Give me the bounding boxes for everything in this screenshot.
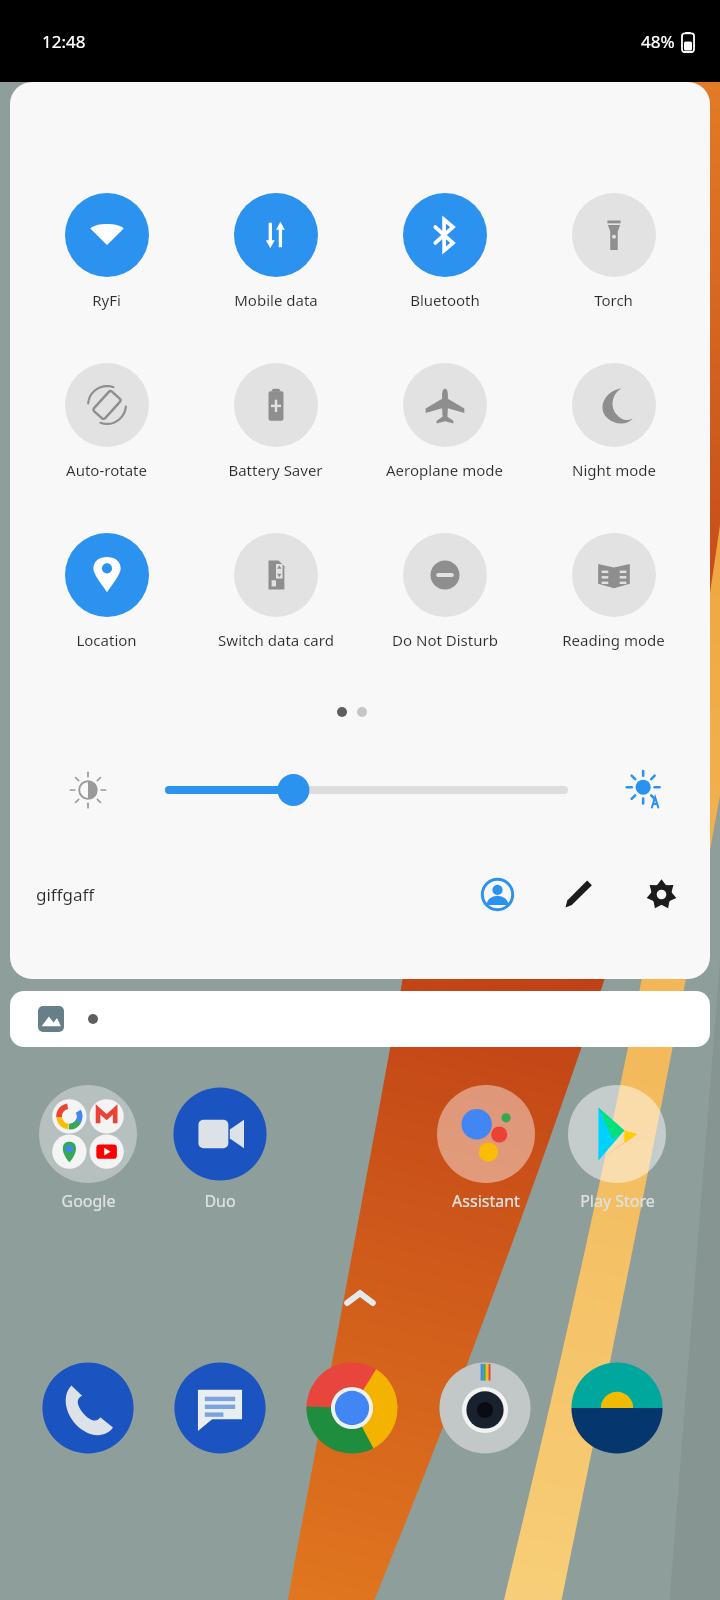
button[interactable]: Torch xyxy=(529,193,698,310)
button[interactable]: Brightness slider xyxy=(165,761,580,819)
staticText: giffgaff xyxy=(36,883,95,906)
staticText: Night mode xyxy=(572,460,656,480)
staticText: Mobile data xyxy=(234,290,318,310)
staticText: Switch data card xyxy=(218,630,334,650)
button[interactable]: Do Not Disturb xyxy=(360,533,529,650)
staticText: Google xyxy=(61,1190,116,1212)
staticText: Play Store xyxy=(580,1190,655,1212)
button[interactable]: Location xyxy=(22,533,191,650)
button[interactable]: Bluetooth xyxy=(360,193,529,310)
button[interactable]: Settings xyxy=(632,865,690,923)
button[interactable]: App shortcut xyxy=(436,1359,534,1457)
button[interactable]: Auto brightness xyxy=(580,761,710,819)
staticText: 48% xyxy=(641,30,675,53)
staticText: Battery Saver xyxy=(228,460,323,480)
button[interactable]: Switch data card xyxy=(191,533,360,650)
button[interactable]: Reading mode xyxy=(529,533,698,650)
staticText: Auto-rotate xyxy=(66,460,147,480)
staticText: Do Not Disturb xyxy=(392,630,498,650)
button[interactable]: Battery Saver xyxy=(191,363,360,480)
button[interactable]: App shortcut xyxy=(171,1359,269,1457)
button[interactable]: Auto-rotate xyxy=(22,363,191,480)
staticText: Reading mode xyxy=(562,630,665,650)
button[interactable]: App shortcut xyxy=(39,1359,137,1457)
button[interactable]: Low brightness xyxy=(10,761,165,819)
button[interactable]: Assistant xyxy=(437,1085,535,1212)
button[interactable]: App shortcut xyxy=(303,1359,401,1457)
staticText: Torch xyxy=(594,290,633,310)
button[interactable]: Play Store xyxy=(568,1085,666,1212)
staticText: Bluetooth xyxy=(410,290,480,310)
button[interactable]: Duo xyxy=(171,1085,269,1212)
button[interactable]: RyFi xyxy=(22,193,191,310)
staticText: 12:48 xyxy=(42,30,86,53)
button[interactable]: App shortcut xyxy=(568,1359,666,1457)
staticText: Assistant xyxy=(452,1190,520,1212)
staticText: Location xyxy=(76,630,137,650)
button[interactable]: Edit tiles xyxy=(550,865,608,923)
button[interactable]: Aeroplane mode xyxy=(360,363,529,480)
staticText: RyFi xyxy=(92,290,121,310)
staticText: Aeroplane mode xyxy=(386,460,503,480)
button[interactable] xyxy=(10,991,710,1047)
button[interactable]: Google xyxy=(39,1085,137,1212)
staticText: Duo xyxy=(204,1190,236,1212)
button[interactable]: User account xyxy=(468,865,526,923)
button[interactable]: Night mode xyxy=(529,363,698,480)
button[interactable]: Mobile data xyxy=(191,193,360,310)
